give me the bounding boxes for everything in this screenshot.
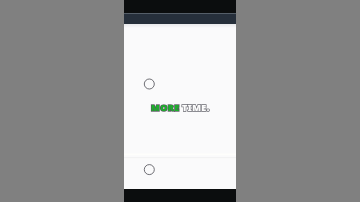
staticText: MORE bbox=[151, 101, 180, 113]
staticText: MORE bbox=[151, 101, 180, 113]
button[interactable]: List item bbox=[124, 24, 236, 152]
button[interactable]: List item bbox=[124, 155, 236, 189]
staticText: TIME. bbox=[182, 101, 210, 113]
staticText: TIME. bbox=[182, 101, 210, 113]
button[interactable]: App bar bbox=[124, 13, 236, 24]
